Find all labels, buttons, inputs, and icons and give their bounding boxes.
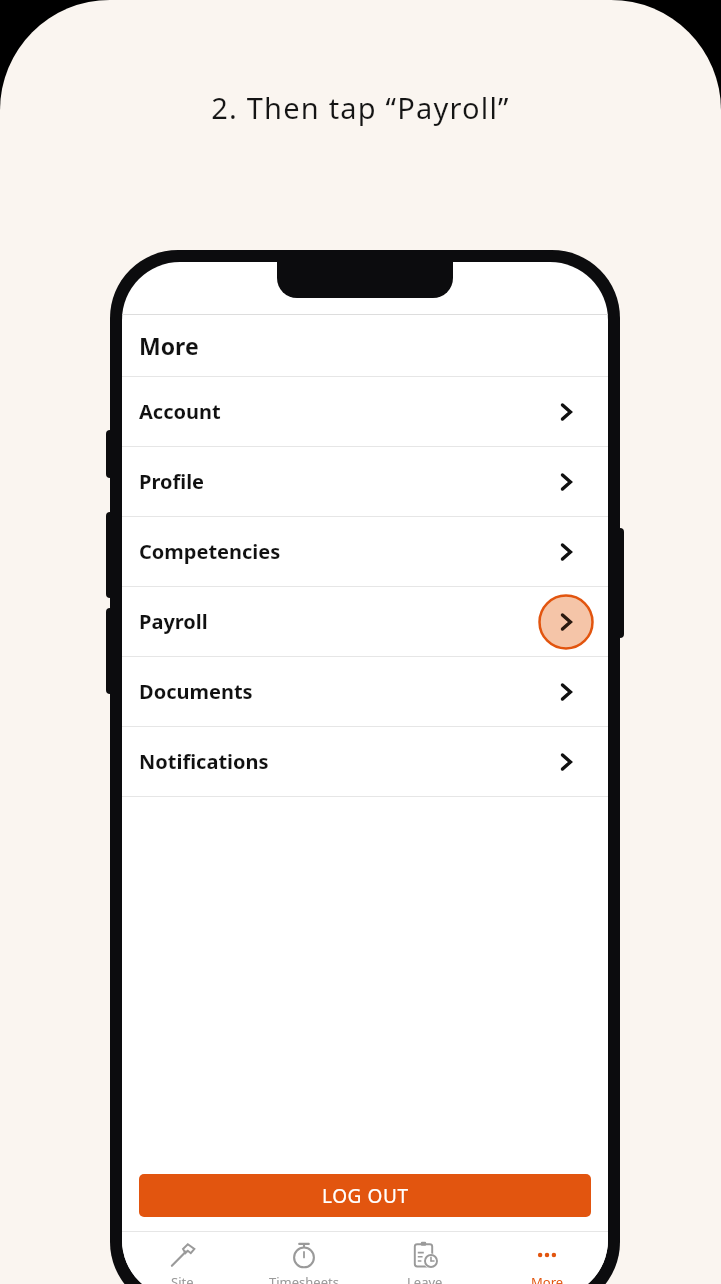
button[interactable]: More [486, 1232, 608, 1284]
button[interactable]: Documents [122, 657, 608, 726]
button[interactable]: Site [122, 1232, 243, 1284]
staticText: More [139, 330, 199, 361]
button[interactable]: Competencies [122, 517, 608, 586]
staticText: Account [139, 398, 221, 425]
staticText: Payroll [139, 608, 208, 635]
staticText: Documents [139, 678, 253, 705]
staticText: Notifications [139, 748, 269, 775]
staticText: 2. Then tap “Payroll” [211, 88, 510, 127]
staticText: More [531, 1273, 564, 1284]
button[interactable]: Notifications [122, 727, 608, 796]
staticText: LOG OUT [322, 1183, 409, 1209]
staticText: Competencies [139, 538, 281, 565]
staticText: Site [171, 1273, 194, 1284]
button[interactable]: Timesheets [243, 1232, 364, 1284]
staticText: Profile [139, 468, 205, 495]
button[interactable]: Leave [364, 1232, 486, 1284]
button[interactable]: Payroll [122, 587, 608, 656]
button[interactable]: Account [122, 377, 608, 446]
staticText: Leave [407, 1273, 443, 1284]
button[interactable]: LOG OUT [139, 1174, 591, 1217]
button[interactable]: Profile [122, 447, 608, 516]
staticText: Timesheets [269, 1273, 339, 1284]
